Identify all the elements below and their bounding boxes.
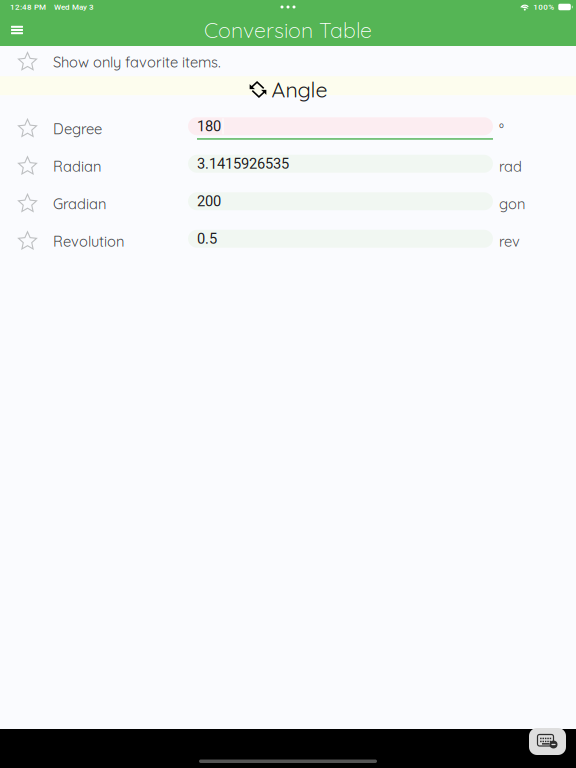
button[interactable]: Favorite Revolution xyxy=(0,223,53,260)
staticText: Degree xyxy=(53,120,102,138)
button[interactable]: Favorite Gradian xyxy=(0,185,53,222)
button[interactable]: 0.5 xyxy=(188,230,493,253)
button[interactable]: Dismiss keyboard xyxy=(529,728,566,755)
staticText: gon xyxy=(499,195,525,213)
staticText: 12:48 PM xyxy=(10,2,46,12)
staticText: Angle xyxy=(271,76,327,103)
staticText: 180 xyxy=(197,118,221,135)
staticText: 3.1415926535 xyxy=(197,155,289,172)
button[interactable]: Favorite Degree xyxy=(0,110,53,147)
staticText: Wed May 3 xyxy=(54,2,94,12)
button[interactable]: 180 xyxy=(188,117,493,140)
staticText: 0.5 xyxy=(197,230,217,247)
staticText: 200 xyxy=(197,193,221,210)
button[interactable]: 3.1415926535 xyxy=(188,155,493,178)
staticText: Conversion Table xyxy=(204,17,372,43)
staticText: rev xyxy=(499,232,520,250)
button[interactable]: Menu xyxy=(2,15,32,45)
button[interactable]: 200 xyxy=(188,192,493,215)
button[interactable]: Favorite Radian xyxy=(0,148,53,185)
staticText: Revolution xyxy=(53,232,124,250)
staticText: Radian xyxy=(53,157,101,175)
staticText: rad xyxy=(499,157,522,175)
staticText: Gradian xyxy=(53,195,106,213)
staticText: ° xyxy=(499,120,504,138)
staticText: Show only favorite items. xyxy=(53,53,221,71)
button[interactable]: Show only favorite items. xyxy=(0,46,576,78)
staticText: 100% xyxy=(533,2,554,12)
